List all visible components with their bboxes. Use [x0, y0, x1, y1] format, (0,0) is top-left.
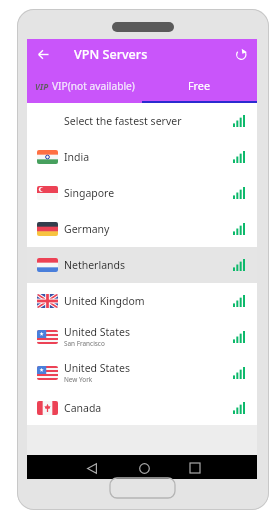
staticText: Netherlands	[64, 258, 126, 272]
staticText: Singapore	[64, 186, 115, 200]
button[interactable]: Refresh	[227, 39, 257, 70]
button[interactable]: United Kingdom	[27, 283, 257, 319]
staticText: VIP	[35, 81, 49, 92]
staticText: Germany	[64, 222, 110, 236]
button[interactable]: Recent apps	[183, 457, 207, 479]
staticText: Canada	[64, 401, 102, 415]
staticText: Free	[188, 78, 211, 93]
button[interactable]: United States	[27, 319, 257, 355]
staticText: New York	[64, 375, 93, 384]
button[interactable]: Singapore	[27, 175, 257, 211]
button[interactable]: Germany	[27, 211, 257, 247]
button[interactable]: VIP	[27, 70, 142, 101]
staticText: VPN Servers	[74, 46, 148, 63]
staticText: United States	[64, 325, 130, 339]
staticText: Select the fastest server	[64, 114, 182, 128]
staticText: VIP(not available)	[52, 79, 135, 93]
staticText: San Francisco	[64, 339, 105, 348]
button[interactable]: Home	[132, 457, 156, 479]
button[interactable]: Canada	[27, 391, 257, 425]
staticText: United Kingdom	[64, 294, 145, 308]
staticText: United States	[64, 361, 130, 375]
button[interactable]: Free	[142, 70, 257, 101]
staticText: India	[64, 150, 90, 164]
button[interactable]: United States	[27, 355, 257, 391]
button[interactable]: Select the fastest server	[27, 103, 257, 139]
button[interactable]: India	[27, 139, 257, 175]
button[interactable]: Back	[27, 39, 60, 70]
button[interactable]: Netherlands	[27, 247, 257, 283]
button[interactable]: Back	[80, 457, 104, 479]
